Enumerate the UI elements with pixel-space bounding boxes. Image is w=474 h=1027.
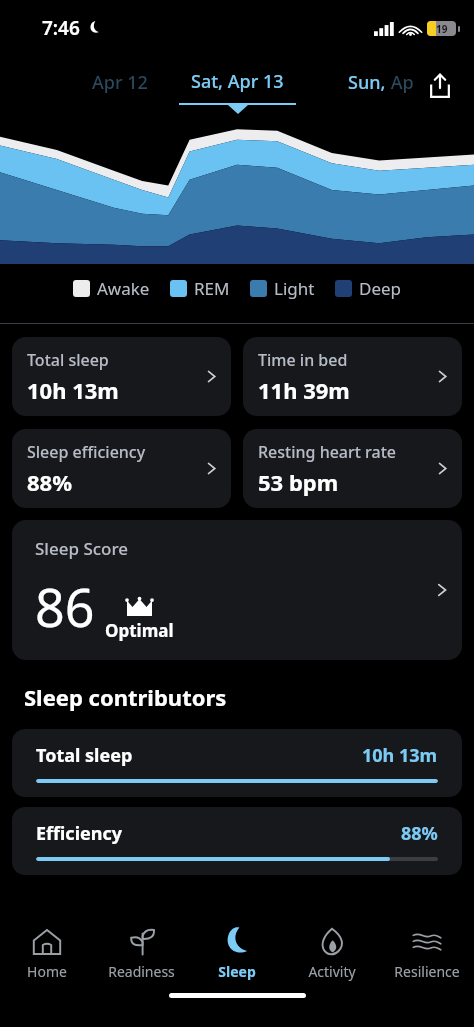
- button[interactable]: Total sleep: [12, 729, 462, 797]
- button[interactable]: Share: [418, 64, 462, 108]
- staticText: Sleep efficiency: [27, 441, 146, 463]
- button[interactable]: Sleep: [189, 923, 284, 985]
- staticText: 7:46: [42, 15, 80, 41]
- staticText: Light: [274, 277, 315, 300]
- staticText: Total sleep: [27, 349, 109, 371]
- staticText: Sun,: [348, 70, 386, 95]
- staticText: Sat, Apr 13: [191, 69, 284, 94]
- staticText: Activity: [308, 962, 356, 981]
- staticText: REM: [194, 277, 230, 300]
- staticText: Total sleep: [36, 743, 133, 768]
- staticText: Apr 12: [92, 70, 148, 95]
- staticText: Ap: [386, 70, 414, 95]
- staticText: Optimal: [105, 619, 174, 642]
- button[interactable]: Time in bed: [243, 337, 462, 416]
- staticText: Readiness: [108, 962, 175, 981]
- staticText: 10h 13m: [362, 743, 438, 768]
- staticText: 10h 13m: [27, 375, 119, 405]
- staticText: Deep: [359, 277, 402, 300]
- staticText: Efficiency: [36, 821, 123, 846]
- staticText: Resilience: [394, 962, 460, 981]
- staticText: Time in bed: [258, 349, 348, 371]
- button[interactable]: Resilience: [379, 923, 474, 985]
- staticText: 86: [35, 571, 95, 642]
- button[interactable]: Apr 12: [88, 66, 152, 99]
- button[interactable]: Sleep Score: [12, 520, 462, 660]
- staticText: 88%: [27, 467, 73, 497]
- staticText: Home: [27, 962, 67, 981]
- button[interactable]: Total sleep: [12, 337, 231, 416]
- staticText: 11h 39m: [258, 375, 350, 405]
- staticText: Sleep: [218, 962, 256, 981]
- staticText: Sleep contributors: [24, 682, 227, 712]
- button[interactable]: Sun,: [344, 66, 418, 99]
- staticText: 53 bpm: [258, 467, 339, 497]
- staticText: Resting heart rate: [258, 441, 396, 463]
- button[interactable]: Resting heart rate: [243, 429, 462, 508]
- button[interactable]: Activity: [284, 923, 379, 985]
- staticText: 88%: [401, 821, 438, 846]
- staticText: Awake: [97, 277, 150, 300]
- button[interactable]: Home: [0, 923, 94, 985]
- button[interactable]: Sat, Apr 13: [179, 66, 296, 114]
- button[interactable]: Efficiency: [12, 807, 462, 875]
- staticText: Sleep Score: [35, 537, 129, 560]
- button[interactable]: Sleep efficiency: [12, 429, 231, 508]
- staticText: 19: [436, 22, 448, 36]
- button[interactable]: Readiness: [94, 923, 189, 985]
